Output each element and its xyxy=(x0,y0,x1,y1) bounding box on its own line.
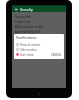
staticText: Screen lock xyxy=(15,15,31,19)
button[interactable]: CANCEL xyxy=(50,52,63,58)
staticText: Notifications xyxy=(16,35,37,40)
staticText: Power button instantly locks xyxy=(15,35,55,39)
button[interactable]: Lock screen message xyxy=(12,39,66,44)
staticText: CANCEL xyxy=(51,53,62,57)
button[interactable]: Screen lock xyxy=(12,14,66,19)
staticText: Make pattern visible xyxy=(15,25,44,29)
button[interactable]: Make pattern visible xyxy=(12,24,66,29)
button[interactable]: Hide sensitive xyxy=(14,47,64,52)
staticText: Lock screen message xyxy=(15,40,45,44)
staticText: Don't show xyxy=(20,53,34,57)
staticText: Hide sensitive xyxy=(20,48,37,52)
staticText: Automatically lock xyxy=(15,30,41,34)
button[interactable]: Power button instantly locks xyxy=(12,34,66,39)
button[interactable]: Automatically lock xyxy=(12,29,66,34)
staticText: Show all content xyxy=(20,43,41,47)
button[interactable]: Navigate up xyxy=(12,6,20,12)
button[interactable]: Show all content xyxy=(14,42,64,47)
button[interactable]: Don't show xyxy=(14,52,64,57)
staticText: Smart Lock xyxy=(15,20,31,24)
staticText: Security xyxy=(20,7,33,12)
button[interactable]: Smart Lock xyxy=(12,19,66,24)
